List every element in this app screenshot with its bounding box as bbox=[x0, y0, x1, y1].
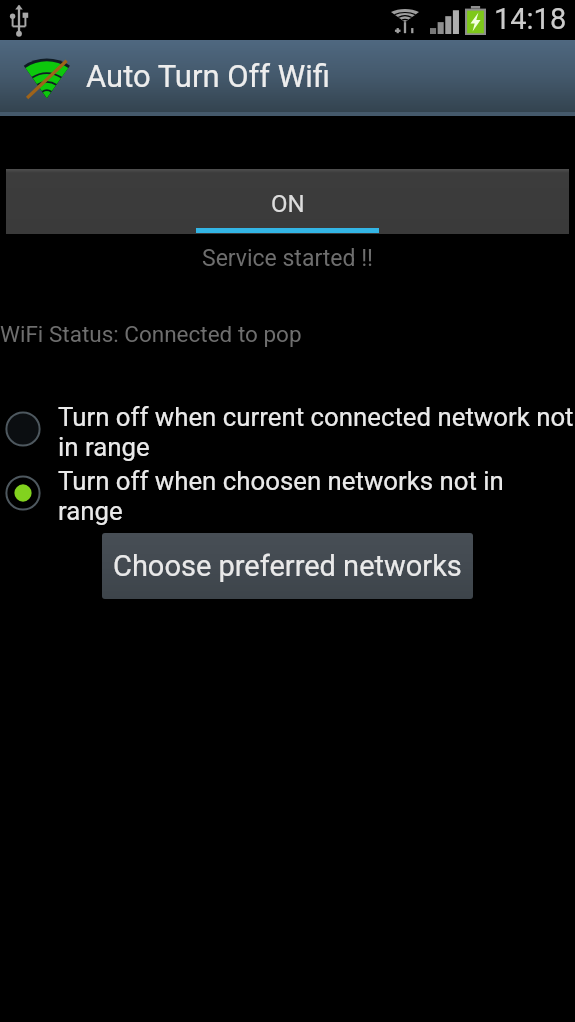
staticText: 14:18 bbox=[494, 2, 567, 36]
staticText: Turn off when choosen networks not in ra… bbox=[58, 466, 504, 526]
staticText: WiFi Status: Connected to pop bbox=[0, 321, 302, 347]
staticText: ON bbox=[271, 190, 305, 218]
staticText: Choose preferred networks bbox=[113, 549, 462, 583]
staticText: Auto Turn Off Wifi bbox=[86, 58, 331, 94]
staticText: Service started !! bbox=[0, 245, 575, 272]
button[interactable]: Turn off when current connected network … bbox=[0, 402, 575, 462]
staticText: Turn off when current connected network … bbox=[58, 402, 574, 462]
button[interactable]: Turn off when choosen networks not in ra… bbox=[0, 466, 575, 526]
button[interactable]: ON bbox=[6, 169, 569, 234]
button[interactable]: Choose preferred networks bbox=[102, 533, 473, 599]
other: Auto Turn Off Wifi bbox=[25, 60, 67, 98]
